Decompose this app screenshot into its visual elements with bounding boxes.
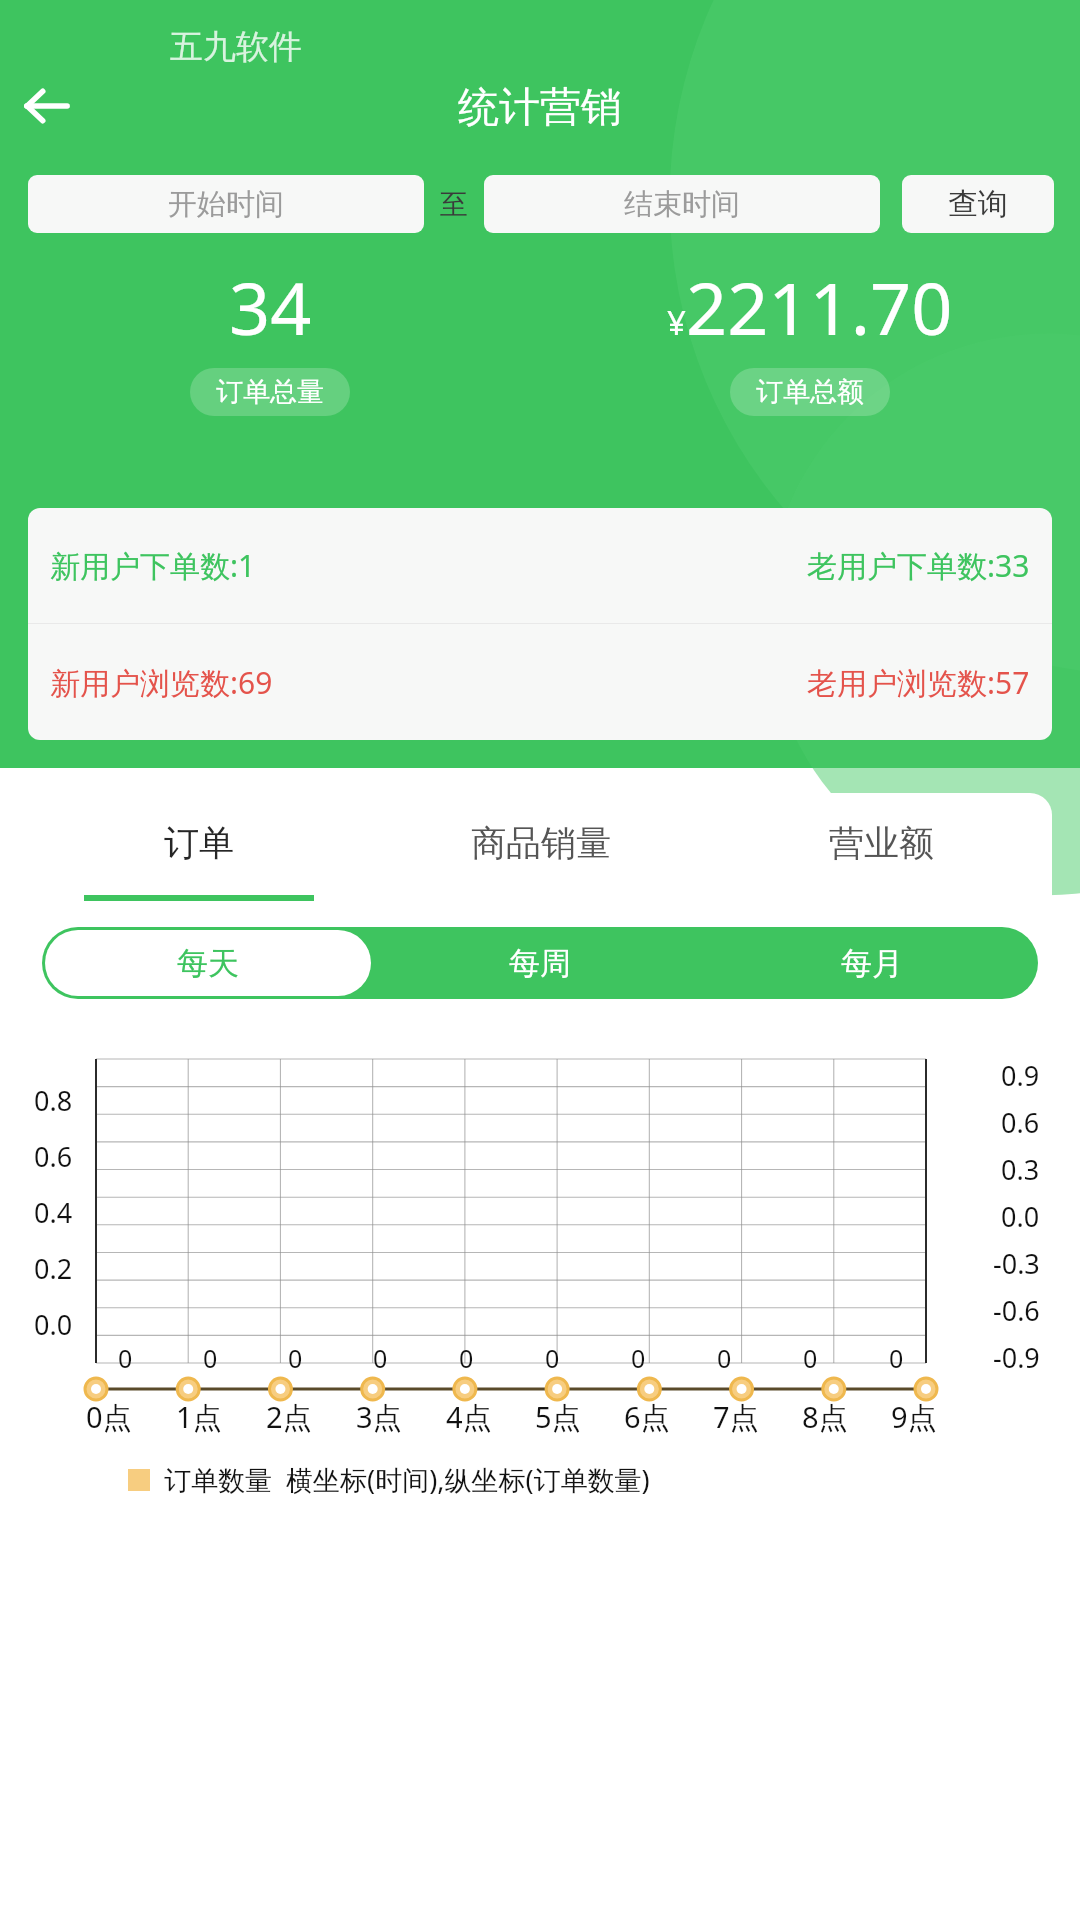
button[interactable]: 营业额 — [711, 793, 1052, 905]
staticText: ¥ — [667, 300, 686, 345]
button[interactable]: 订单 — [28, 793, 370, 905]
staticText: 商品销量 — [471, 821, 611, 865]
staticText: 订单总额 — [756, 375, 864, 409]
staticText: 五九软件 — [170, 26, 302, 68]
staticText: 0 — [631, 1341, 646, 1375]
staticText: 每周 — [509, 944, 571, 983]
staticText: 1点 — [176, 1397, 222, 1437]
staticText: 0.6 — [34, 1138, 73, 1175]
button[interactable]: 每周 — [374, 927, 706, 999]
staticText: 至 — [440, 187, 468, 222]
staticText: 0.3 — [1001, 1151, 1040, 1188]
staticText: -0.3 — [993, 1245, 1040, 1282]
staticText: 9点 — [891, 1397, 937, 1437]
button[interactable]: 每月 — [706, 927, 1038, 999]
staticText: 每月 — [841, 944, 903, 983]
staticText: 订单数量 横坐标(时间),纵坐标(订单数量) — [164, 1461, 650, 1498]
staticText: 2点 — [266, 1397, 312, 1437]
staticText: 0.2 — [34, 1250, 73, 1287]
staticText: 0.0 — [1001, 1198, 1040, 1235]
staticText: 0 — [545, 1341, 560, 1375]
staticText: -0.6 — [993, 1292, 1040, 1329]
staticText: 2211.70 — [686, 258, 953, 356]
staticText: -0.9 — [993, 1339, 1040, 1376]
staticText: 营业额 — [829, 821, 934, 865]
staticText: 0.6 — [1001, 1104, 1040, 1141]
staticText: 0点 — [86, 1397, 132, 1437]
staticText: 0.9 — [1001, 1057, 1040, 1094]
button[interactable]: 每天 — [45, 930, 371, 996]
staticText: 3点 — [356, 1397, 402, 1437]
staticText: 每天 — [177, 944, 239, 983]
staticText: 0 — [889, 1341, 904, 1375]
staticText: 0 — [803, 1341, 818, 1375]
staticText: 0 — [288, 1341, 303, 1375]
staticText: 老用户浏览数:57 — [807, 662, 1030, 703]
staticText: 34 — [229, 258, 312, 356]
staticText: 订单 — [164, 821, 234, 865]
staticText: 结束时间 — [624, 186, 740, 223]
staticText: 0.4 — [34, 1194, 73, 1231]
staticText: 查询 — [948, 185, 1008, 223]
staticText: 开始时间 — [168, 186, 284, 223]
button[interactable]: 查询 — [902, 175, 1054, 233]
staticText: 0 — [717, 1341, 732, 1375]
staticText: 5点 — [535, 1397, 581, 1437]
staticText: 0 — [459, 1341, 474, 1375]
staticText: 老用户下单数:33 — [807, 545, 1030, 586]
staticText: 0 — [203, 1341, 218, 1375]
button[interactable]: 商品销量 — [370, 793, 711, 905]
staticText: 0 — [373, 1341, 388, 1375]
button[interactable]: 开始时间 — [28, 175, 424, 233]
staticText: 0.8 — [34, 1082, 73, 1119]
button[interactable]: 结束时间 — [484, 175, 880, 233]
button[interactable]: Back — [8, 68, 84, 144]
staticText: 7点 — [713, 1397, 759, 1437]
staticText: 8点 — [802, 1397, 848, 1437]
staticText: 4点 — [446, 1397, 492, 1437]
staticText: 0 — [118, 1341, 133, 1375]
staticText: 新用户浏览数:69 — [50, 662, 273, 703]
staticText: 订单总量 — [216, 375, 324, 409]
staticText: 6点 — [624, 1397, 670, 1437]
staticText: 0.0 — [34, 1306, 73, 1343]
staticText: 统计营销 — [0, 82, 1080, 134]
staticText: 新用户下单数:1 — [50, 545, 256, 586]
